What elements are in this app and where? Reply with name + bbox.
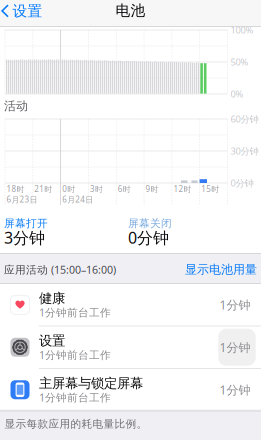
button[interactable]: 返回设置 [0, 0, 42, 23]
staticText: 设置 [39, 333, 65, 349]
staticText: 3时 [90, 184, 103, 194]
staticText: 电池 [115, 1, 145, 19]
staticText: 1分钟 [219, 297, 250, 313]
staticText: 屏幕关闭 [128, 217, 172, 230]
staticText: 显示每款应用的耗电量比例。 [4, 417, 147, 430]
staticText: 60分钟 [230, 113, 258, 125]
staticText: 0分钟 [230, 177, 253, 189]
staticText: 0分钟 [128, 227, 169, 248]
staticText: 1分钟 [219, 382, 250, 398]
staticText: 主屏幕与锁定屏幕 [39, 375, 143, 391]
staticText: 30分钟 [230, 145, 258, 157]
staticText: 0时 [62, 184, 75, 194]
staticText: 活动 [4, 99, 28, 113]
staticText: 1分钟前台工作 [39, 390, 111, 404]
staticText: 0% [230, 88, 243, 100]
button[interactable]: 显示电池用量 [185, 262, 257, 277]
staticText: 健康 [39, 290, 65, 306]
staticText: 1分钟前台工作 [39, 348, 111, 362]
staticText: 50% [230, 56, 248, 68]
button[interactable]: 健康 [0, 283, 261, 326]
staticText: 1分钟前台工作 [39, 305, 111, 319]
button[interactable]: 设置 [0, 326, 261, 368]
staticText: 6月24日 [62, 194, 93, 205]
staticText: 15时 [201, 184, 219, 194]
staticText: 9时 [146, 184, 159, 194]
staticText: 100% [230, 24, 253, 36]
staticText: 显示电池用量 [185, 262, 257, 277]
staticText: 6月23日 [6, 194, 37, 205]
staticText: 6时 [118, 184, 131, 194]
staticText: 设置 [12, 2, 42, 20]
staticText: 1分钟 [219, 339, 250, 355]
staticText: 3分钟 [4, 227, 45, 248]
staticText: 21时 [34, 184, 52, 194]
button[interactable]: 主屏幕与锁定屏幕 [0, 368, 261, 411]
staticText: 18时 [6, 184, 24, 194]
staticText: 应用活动 (15:00–16:00) [4, 262, 116, 277]
staticText: 12时 [173, 184, 191, 194]
staticText: 屏幕打开 [4, 217, 48, 230]
